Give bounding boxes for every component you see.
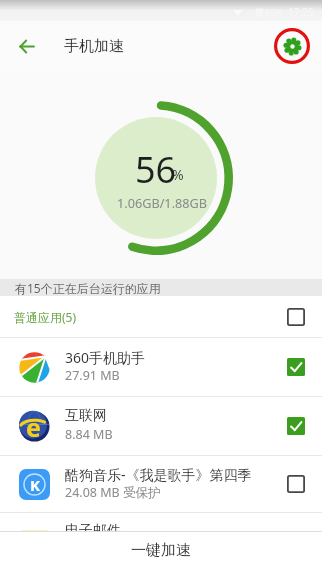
staticText: 27.91 MB bbox=[65, 367, 120, 384]
staticText: e bbox=[26, 410, 41, 441]
button[interactable]: 360手机助手 bbox=[0, 338, 322, 396]
staticText: 8.84 MB bbox=[65, 426, 113, 443]
staticText: 360手机助手 bbox=[65, 348, 146, 367]
button[interactable]: K bbox=[0, 456, 322, 512]
staticText: 电子邮件 bbox=[65, 522, 121, 540]
button[interactable]: Not selected bbox=[287, 308, 305, 326]
staticText: 56 bbox=[135, 145, 177, 194]
staticText: 82% bbox=[265, 6, 283, 18]
button[interactable]: Settings bbox=[273, 27, 311, 65]
button[interactable]: Back bbox=[2, 22, 50, 70]
button[interactable]: 一键加速 bbox=[0, 531, 322, 569]
button[interactable]: 电子邮件 bbox=[0, 513, 322, 569]
staticText: 酷狗音乐-《我是歌手》第四季 bbox=[65, 465, 252, 484]
staticText: % bbox=[172, 165, 184, 184]
button[interactable]: Not selected bbox=[287, 475, 305, 493]
staticText: 24.08 MB 受保护 bbox=[65, 484, 161, 501]
button[interactable]: 普通应用(5) bbox=[0, 296, 322, 337]
staticText: 一键加速 bbox=[131, 541, 191, 560]
staticText: 普通应用(5) bbox=[14, 309, 77, 325]
button[interactable]: Selected bbox=[287, 417, 305, 435]
staticText: 互联网 bbox=[65, 407, 107, 425]
button[interactable]: e bbox=[0, 397, 322, 455]
button[interactable]: Selected bbox=[287, 358, 305, 376]
staticText: K bbox=[30, 475, 40, 495]
staticText: 17:25 bbox=[288, 5, 314, 19]
staticText: 手机加速 bbox=[64, 37, 124, 56]
staticText: 有15个正在后台运行的应用 bbox=[15, 280, 161, 296]
staticText: 1.06GB/1.88GB bbox=[117, 194, 208, 211]
